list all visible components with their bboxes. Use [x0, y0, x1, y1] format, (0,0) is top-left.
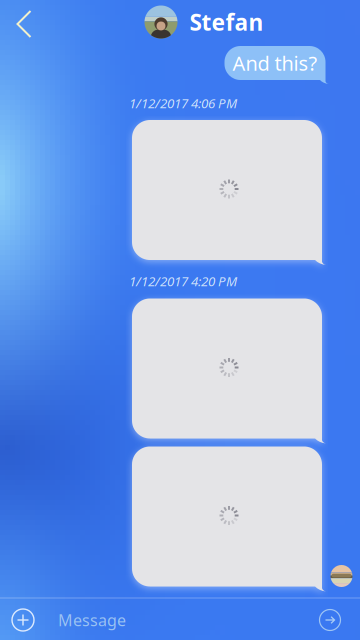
staticText: 1/12/2017 4:20 PM	[129, 272, 237, 290]
button[interactable]: Send	[300, 599, 360, 640]
staticText: Message	[58, 609, 126, 631]
button[interactable]: Add attachment	[0, 599, 46, 640]
staticText: And this?	[232, 50, 317, 76]
staticText: Stefan	[189, 7, 263, 37]
button[interactable]: Back	[0, 0, 52, 44]
staticText: 1/12/2017 4:06 PM	[129, 94, 237, 112]
